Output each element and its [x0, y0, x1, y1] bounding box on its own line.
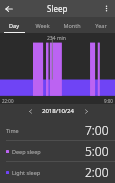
staticText: 7:00: [85, 122, 109, 138]
staticText: 2018/10/24: [42, 107, 74, 115]
staticText: 234 min: [47, 35, 66, 42]
button[interactable]: Day: [0, 17, 28, 33]
staticText: Time: [6, 127, 19, 134]
button[interactable]: Year: [86, 17, 115, 33]
staticText: Day: [9, 22, 19, 29]
staticText: Deep sleep: [12, 148, 41, 155]
button[interactable]: Deep sleep: [0, 141, 115, 161]
staticText: 22:00: [2, 98, 14, 104]
staticText: 2:00: [85, 164, 109, 180]
button[interactable]: Light sleep: [0, 162, 115, 182]
staticText: Week: [35, 22, 50, 29]
staticText: 9:00: [104, 98, 113, 104]
button[interactable]: 2018/10/24: [36, 107, 80, 115]
button[interactable]: Previous day: [24, 105, 36, 117]
button[interactable]: Time: [0, 120, 115, 140]
staticText: Year: [95, 22, 107, 29]
button[interactable]: Next day: [80, 105, 92, 117]
button[interactable]: Back: [0, 0, 17, 17]
button[interactable]: Week: [28, 17, 57, 33]
staticText: Light sleep: [12, 169, 41, 176]
staticText: 5:00: [85, 143, 109, 159]
button[interactable]: More options: [98, 0, 115, 17]
button[interactable]: Month: [57, 17, 86, 33]
staticText: Sleep: [47, 3, 68, 14]
staticText: Month: [63, 22, 81, 29]
